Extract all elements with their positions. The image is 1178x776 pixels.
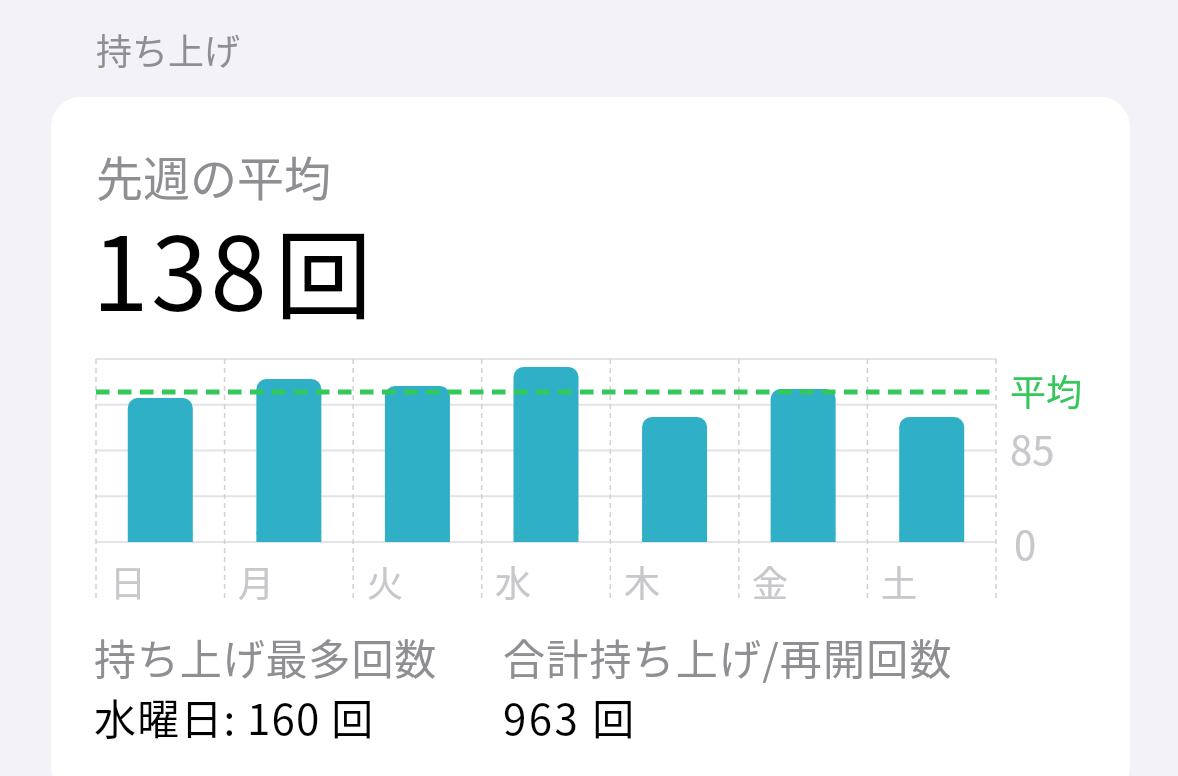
staticText: 火 [367,555,404,607]
staticText: 日 [110,555,147,607]
staticText: 先週の平均 [96,141,331,209]
staticText: 水 [495,555,532,607]
staticText: 金 [752,555,789,607]
staticText: 水曜日: 160 回 [94,686,375,747]
staticText: 963 回 [503,686,637,747]
button[interactable] [51,97,1130,776]
staticText: 138 [92,193,270,341]
staticText: 回 [275,198,372,338]
staticText: 85 [1010,419,1055,477]
staticText: 土 [881,555,918,607]
staticText: 持ち上げ最多回数 [94,626,438,687]
staticText: 平均 [1010,364,1083,416]
staticText: 木 [624,555,661,607]
staticText: 月 [238,555,275,607]
staticText: 0 [1014,514,1037,572]
staticText: 持ち上げ [96,23,241,75]
staticText: 合計持ち上げ/再開回数 [503,626,953,687]
